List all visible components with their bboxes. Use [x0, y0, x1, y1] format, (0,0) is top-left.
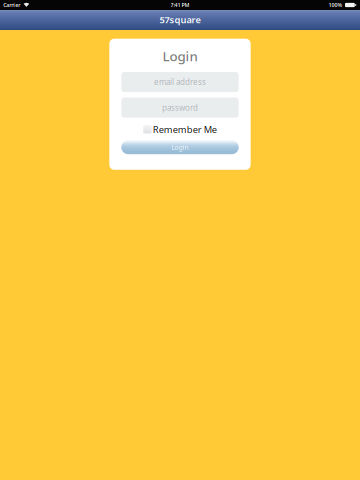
button[interactable]: password	[121, 97, 239, 118]
staticText: 57square	[159, 13, 200, 26]
staticText: Remember Me	[153, 123, 217, 136]
staticText: 100%	[329, 1, 343, 9]
staticText: Login	[171, 143, 188, 152]
staticText: password	[162, 102, 198, 113]
staticText: email address	[154, 77, 206, 87]
staticText: 7:41 PM	[170, 1, 189, 9]
button[interactable]: email address	[121, 72, 239, 92]
button[interactable]: Login	[121, 140, 239, 154]
button[interactable]: Remember Me	[143, 125, 217, 134]
staticText: Carrier	[3, 1, 20, 9]
staticText: Login	[162, 47, 197, 65]
